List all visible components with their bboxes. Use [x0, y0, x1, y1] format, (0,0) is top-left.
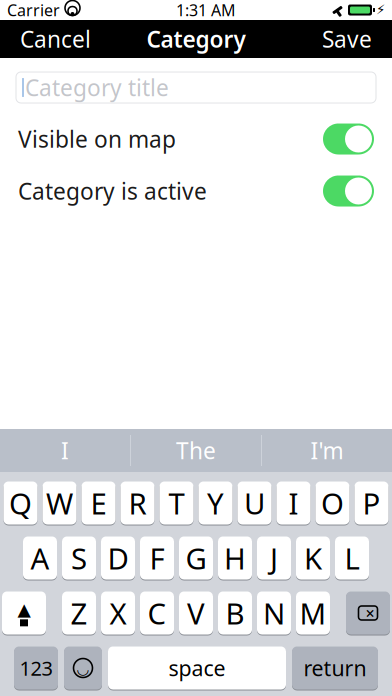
button[interactable]: Category is active [0, 169, 392, 213]
button[interactable]: C [140, 591, 174, 635]
button[interactable]: E [81, 481, 115, 525]
button[interactable]: return [292, 646, 378, 690]
staticText: Carrier [7, 0, 60, 21]
staticText: M [299, 593, 326, 632]
button[interactable]: Delete [346, 591, 390, 635]
staticText: Y [207, 483, 224, 522]
staticText: T [168, 483, 184, 522]
staticText: Visible on map [18, 124, 176, 154]
staticText: D [107, 538, 128, 577]
button[interactable]: R [120, 481, 154, 525]
staticText: B [225, 593, 244, 632]
button[interactable]: B [218, 591, 252, 635]
button[interactable]: O [315, 481, 349, 525]
staticText: R [128, 483, 146, 522]
button[interactable]: K [296, 536, 330, 580]
button[interactable]: X [101, 591, 135, 635]
button[interactable]: Z [62, 591, 96, 635]
staticText: O [321, 483, 344, 522]
staticText: E [90, 483, 106, 522]
button[interactable]: Cancel [10, 16, 101, 62]
button[interactable]: The [131, 429, 261, 472]
staticText: Category [146, 24, 245, 54]
button[interactable]: U [237, 481, 271, 525]
button[interactable]: Shift [2, 591, 46, 635]
staticText: J [270, 538, 278, 577]
staticText: S [71, 538, 87, 577]
button[interactable]: W [42, 481, 76, 525]
staticText: L [344, 538, 359, 577]
staticText: Save [322, 24, 372, 54]
staticText: ⚡︎ [376, 2, 385, 17]
staticText: I'm [310, 435, 343, 465]
button[interactable]: L [335, 536, 369, 580]
staticText: N [263, 593, 285, 632]
staticText: Cancel [20, 24, 91, 54]
staticText: W [46, 483, 73, 522]
staticText: A [30, 538, 49, 577]
button[interactable]: H [218, 536, 252, 580]
staticText: × [365, 602, 374, 624]
button[interactable]: M [296, 591, 330, 635]
button[interactable]: Save [312, 16, 382, 62]
button[interactable]: V [179, 591, 213, 635]
staticText: K [304, 538, 322, 577]
staticText: X [109, 593, 126, 632]
button[interactable]: Q [3, 481, 37, 525]
button[interactable]: Category title [16, 72, 376, 103]
staticText: G [185, 538, 206, 577]
staticText: 1:31 AM [176, 0, 236, 21]
button[interactable]: Emoji [64, 646, 102, 690]
staticText: F [149, 538, 164, 577]
staticText: I [288, 483, 298, 522]
button[interactable]: I [276, 481, 310, 525]
staticText: H [224, 538, 246, 577]
button[interactable]: 123 [14, 646, 58, 690]
button[interactable]: N [257, 591, 291, 635]
staticText: 123 [19, 655, 52, 681]
staticText: ◡ [76, 661, 89, 677]
button[interactable]: A [23, 536, 57, 580]
button[interactable]: Y [198, 481, 232, 525]
staticText: return [303, 654, 366, 682]
button[interactable]: D [101, 536, 135, 580]
staticText: C [147, 593, 166, 632]
staticText: The [176, 435, 216, 465]
staticText: U [244, 483, 265, 522]
staticText: Category title [25, 72, 169, 102]
staticText: P [362, 483, 380, 522]
staticText: Z [70, 593, 87, 632]
button[interactable]: I [0, 429, 130, 472]
button[interactable]: I'm [262, 429, 392, 472]
button[interactable]: S [62, 536, 96, 580]
staticText: space [168, 654, 225, 682]
staticText: I [61, 435, 69, 465]
button[interactable]: F [140, 536, 174, 580]
staticText: Q [9, 483, 32, 522]
staticText: ▲ [17, 600, 30, 619]
staticText: Category is active [18, 176, 207, 206]
button[interactable]: Visible on map [0, 117, 392, 161]
button[interactable]: T [159, 481, 193, 525]
staticText: V [187, 593, 205, 632]
button[interactable]: P [354, 481, 388, 525]
button[interactable]: G [179, 536, 213, 580]
button[interactable]: space [108, 646, 286, 690]
button[interactable]: J [257, 536, 291, 580]
